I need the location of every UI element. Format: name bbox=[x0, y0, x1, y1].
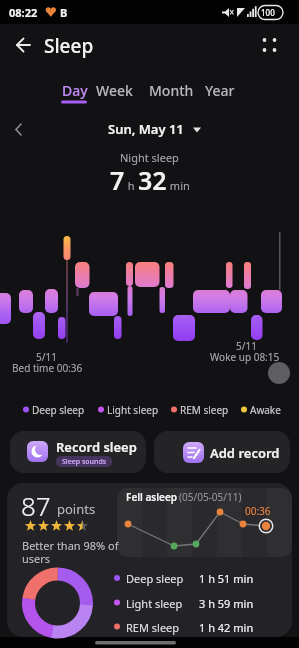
staticText: Sleep bbox=[44, 33, 94, 59]
staticText: Better than 98% of bbox=[22, 538, 119, 553]
staticText: points bbox=[57, 500, 96, 518]
staticText: Light sleep bbox=[107, 403, 159, 417]
staticText: 32 bbox=[138, 163, 167, 197]
staticText: 5/11 bbox=[236, 339, 257, 353]
staticText: Fell asleep bbox=[126, 490, 178, 504]
staticText: Awake bbox=[250, 403, 281, 417]
staticText: Add record bbox=[210, 444, 280, 462]
staticText: 1 h 51 min bbox=[199, 571, 254, 586]
staticText: Week bbox=[96, 81, 133, 100]
staticText: 87 bbox=[21, 488, 51, 523]
staticText: Bed time 00:36 bbox=[12, 361, 83, 375]
staticText: Sun, May 11 bbox=[108, 120, 184, 138]
staticText: 1 h 42 min bbox=[199, 620, 254, 635]
staticText: REM sleep bbox=[126, 620, 180, 635]
staticText: Light sleep bbox=[126, 596, 183, 611]
staticText: Month bbox=[149, 81, 194, 100]
staticText: B bbox=[60, 5, 68, 20]
staticText: h bbox=[125, 178, 138, 193]
staticText: min bbox=[167, 178, 190, 193]
staticText: Night sleep bbox=[120, 150, 179, 165]
staticText: (05/05-05/11) bbox=[179, 490, 242, 504]
staticText: Sleep sounds bbox=[62, 457, 107, 467]
staticText: 3 h 59 min bbox=[199, 596, 254, 611]
staticText: Woke up 08:15 bbox=[210, 350, 280, 364]
staticText: Deep sleep bbox=[126, 571, 184, 586]
staticText: Deep sleep bbox=[32, 403, 85, 417]
staticText: REM sleep bbox=[180, 403, 229, 417]
staticText: users bbox=[22, 551, 51, 566]
staticText: 08:22 bbox=[9, 5, 38, 20]
staticText: 100 bbox=[261, 7, 275, 18]
staticText: 5/11 bbox=[36, 350, 57, 364]
staticText: 00:36 bbox=[245, 504, 271, 518]
staticText: Record sleep bbox=[56, 438, 137, 456]
staticText: 7 bbox=[110, 163, 125, 197]
staticText: Day bbox=[62, 81, 88, 100]
staticText: Year bbox=[205, 81, 235, 100]
